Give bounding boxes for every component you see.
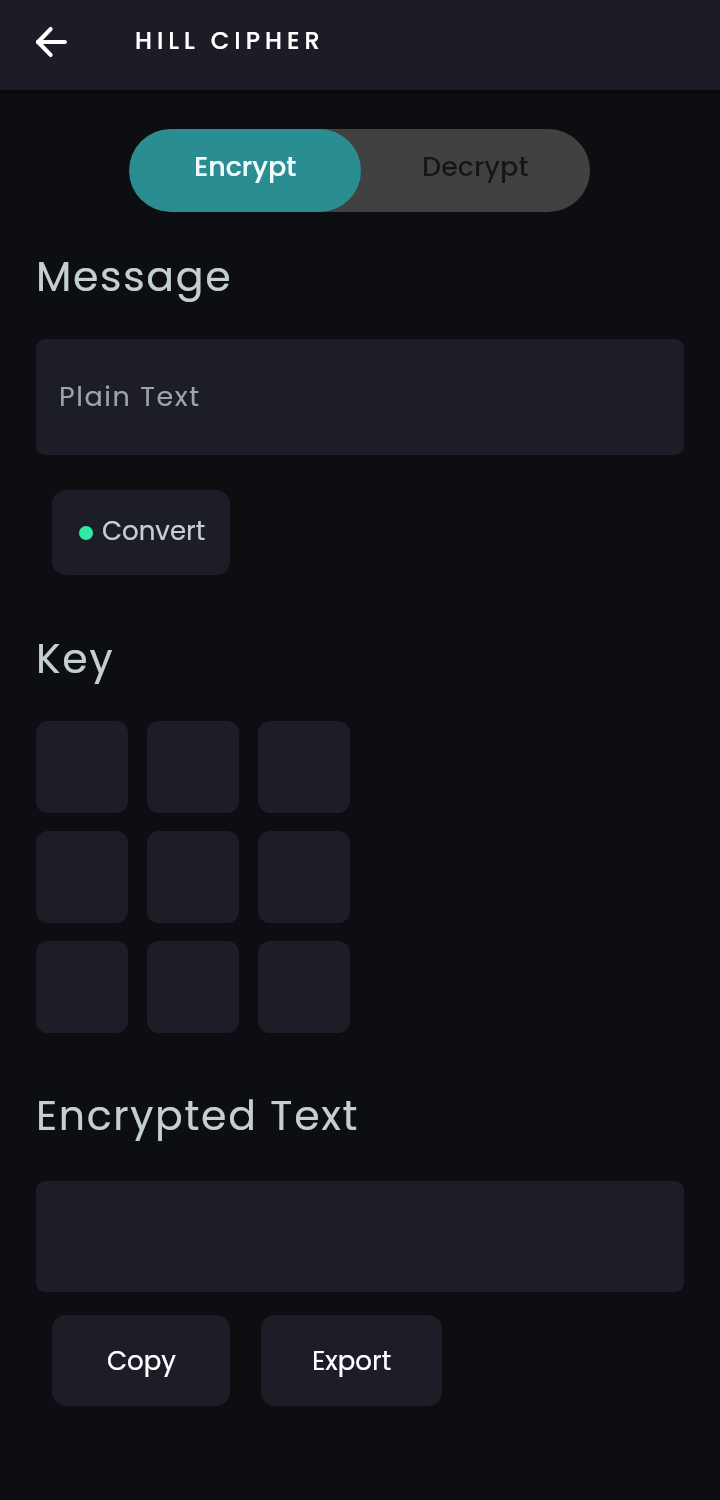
button[interactable]: Back (20, 10, 83, 73)
staticText: Plain Text (59, 378, 201, 416)
staticText: Export (312, 1343, 392, 1379)
button[interactable]: Convert (52, 490, 230, 575)
staticText: Key (36, 630, 115, 687)
staticText: Decrypt (422, 148, 529, 186)
button[interactable]: Plain Text (36, 339, 684, 455)
button[interactable]: Export (261, 1315, 442, 1406)
staticText: Encrypt (194, 148, 297, 186)
staticText: Copy (107, 1343, 176, 1379)
staticText: Message (36, 248, 233, 305)
button[interactable]: Encrypt (129, 129, 361, 212)
staticText: Convert (102, 513, 206, 549)
staticText: Encrypted Text (36, 1087, 360, 1144)
staticText: HILL CIPHER (135, 24, 325, 58)
button[interactable]: Decrypt (361, 129, 590, 212)
button[interactable]: Copy (52, 1315, 230, 1406)
